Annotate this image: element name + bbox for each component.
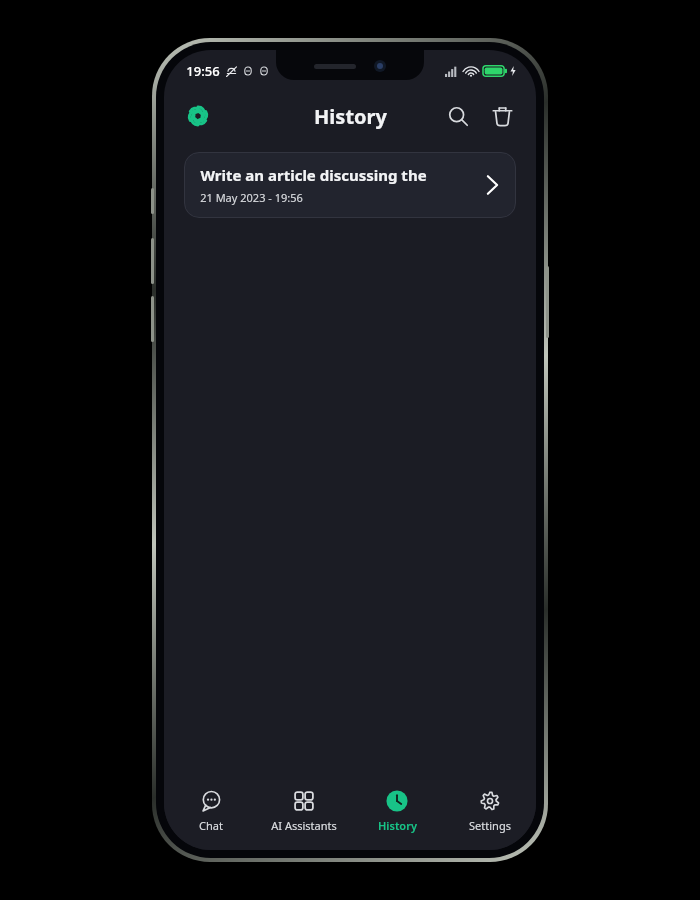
staticText: Chat bbox=[199, 818, 223, 833]
button[interactable]: Write an article discussing the bbox=[184, 152, 516, 218]
staticText: 19:56 bbox=[186, 62, 220, 80]
staticText: History bbox=[378, 818, 417, 833]
button[interactable]: ChatGPT logo bbox=[178, 96, 218, 136]
staticText: History bbox=[314, 103, 387, 130]
button[interactable]: Delete all history bbox=[482, 96, 522, 136]
staticText: 21 May 2023 - 19:56 bbox=[200, 190, 303, 205]
staticText: Write an article discussing the bbox=[200, 165, 427, 185]
button[interactable]: Settings bbox=[448, 788, 532, 835]
button[interactable]: History bbox=[355, 788, 439, 835]
button[interactable]: Chat bbox=[169, 788, 253, 835]
staticText: Settings bbox=[469, 818, 511, 833]
button[interactable]: AI Assistants bbox=[262, 788, 346, 835]
staticText: AI Assistants bbox=[271, 818, 337, 833]
button[interactable]: Search bbox=[438, 96, 478, 136]
